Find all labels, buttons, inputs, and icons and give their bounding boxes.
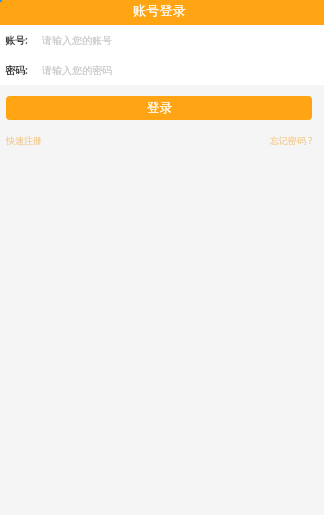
button[interactable]: 账号: <box>0 25 324 55</box>
button[interactable]: 快速注册 <box>2 132 46 149</box>
staticText: 忘记密码 ? <box>270 134 313 146</box>
button[interactable]: 忘记密码 ? <box>266 131 317 149</box>
staticText: 账号: <box>5 33 28 47</box>
button[interactable]: 登录 <box>6 96 312 120</box>
staticText: 登录 <box>147 100 172 116</box>
staticText: 请输入您的账号 <box>42 34 112 47</box>
staticText: 快速注册 <box>6 135 42 146</box>
staticText: 账号登录 <box>133 2 186 18</box>
staticText: 密码: <box>5 63 28 77</box>
staticText: 请输入您的密码 <box>42 64 112 77</box>
button[interactable]: 密码: <box>0 55 324 85</box>
